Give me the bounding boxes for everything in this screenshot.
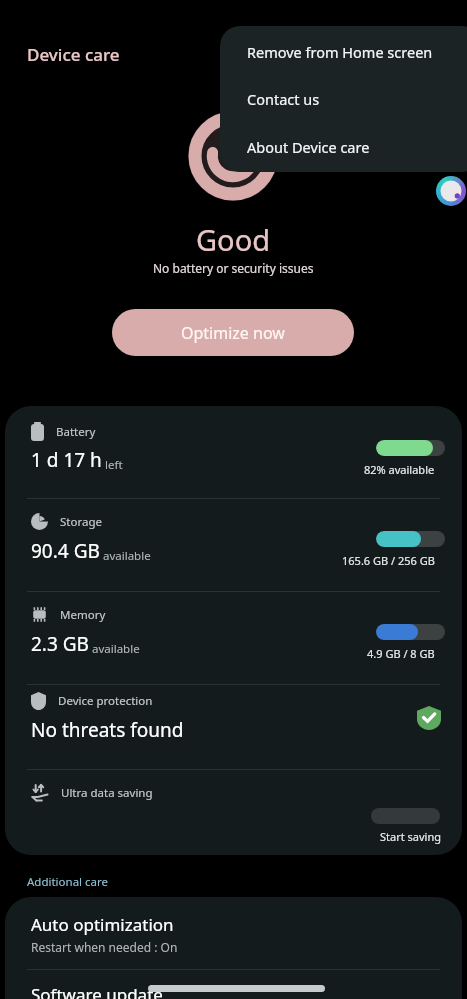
- button[interactable]: Ultra data saving: [5, 770, 462, 855]
- staticText: Device care: [27, 43, 120, 66]
- staticText: 1 d 17 h: [31, 447, 102, 473]
- staticText: Storage: [60, 514, 102, 530]
- button[interactable]: Auto optimization: [5, 897, 462, 955]
- staticText: Restart when needed : On: [31, 939, 178, 955]
- staticText: 90.4 GB: [31, 538, 100, 564]
- button[interactable]: Remove from Home screen: [220, 30, 467, 74]
- button[interactable]: Storage: [5, 499, 462, 591]
- button[interactable]: About Device care: [220, 125, 467, 169]
- staticText: Device protection: [58, 693, 153, 709]
- staticText: Auto optimization: [31, 913, 174, 936]
- staticText: Good: [196, 220, 271, 259]
- staticText: Battery: [56, 424, 96, 440]
- staticText: 4.9 GB / 8 GB: [367, 646, 435, 661]
- staticText: Software update: [31, 983, 163, 999]
- staticText: No threats found: [31, 717, 184, 743]
- button[interactable]: Device protection: [5, 685, 462, 769]
- button[interactable]: Device care: [27, 43, 120, 66]
- button[interactable]: Contact us: [220, 77, 467, 121]
- button[interactable]: Profile: [436, 176, 466, 206]
- staticText: left: [102, 457, 123, 473]
- staticText: Start saving: [380, 829, 441, 844]
- staticText: Contact us: [247, 89, 320, 109]
- staticText: available: [89, 641, 140, 657]
- staticText: Ultra data saving: [61, 785, 153, 801]
- staticText: 2.3 GB: [31, 631, 89, 657]
- staticText: Remove from Home screen: [247, 42, 433, 62]
- staticText: 82% available: [364, 462, 435, 477]
- button[interactable]: Optimize now: [112, 309, 354, 356]
- staticText: Optimize now: [181, 322, 285, 344]
- staticText: 165.6 GB / 256 GB: [342, 553, 435, 568]
- staticText: Memory: [60, 607, 106, 623]
- staticText: About Device care: [247, 137, 370, 157]
- staticText: No battery or security issues: [153, 260, 314, 276]
- staticText: Additional care: [27, 874, 109, 890]
- button[interactable]: Battery: [5, 406, 462, 498]
- button[interactable]: Software update: [5, 970, 462, 999]
- button[interactable]: Memory: [5, 592, 462, 684]
- staticText: available: [100, 548, 151, 564]
